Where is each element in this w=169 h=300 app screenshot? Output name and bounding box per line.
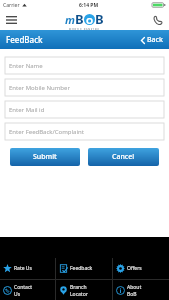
staticText: M O B I L E B A N K I N G — [69, 28, 100, 30]
button[interactable]: Cancel — [88, 148, 159, 166]
staticText: About BoB — [127, 284, 142, 297]
staticText: Enter FeedBack/Complaint — [9, 128, 84, 136]
button[interactable]: Submit — [10, 148, 80, 166]
button[interactable]: Enter Name — [5, 57, 164, 74]
staticText: Carrier — [3, 2, 20, 9]
staticText: Offers — [127, 265, 142, 272]
staticText: Rate Us — [14, 265, 32, 272]
button[interactable]: Call — [151, 13, 165, 27]
staticText: 6:14 PM — [79, 2, 99, 9]
staticText: B — [75, 10, 84, 28]
staticText: Feedback — [70, 265, 93, 272]
button[interactable]: Rate Us — [0, 258, 55, 279]
staticText: Enter Mobile Number — [9, 84, 70, 92]
staticText: Enter Mail id — [9, 106, 45, 114]
button[interactable]: Enter Mail id — [5, 101, 164, 118]
button[interactable]: Back — [141, 35, 163, 45]
staticText: B — [95, 10, 104, 28]
staticText: Back — [147, 35, 163, 45]
button[interactable]: Enter Mobile Number — [5, 79, 164, 96]
staticText: Cancel — [112, 152, 135, 162]
button[interactable]: Branch Locator — [56, 280, 112, 300]
button[interactable]: About BoB — [113, 280, 169, 300]
staticText: m — [65, 12, 75, 27]
button[interactable]: Enter FeedBack/Complaint — [5, 123, 164, 140]
staticText: Contact Us — [14, 284, 33, 297]
staticText: Submit — [33, 152, 57, 162]
staticText: Enter Name — [9, 62, 43, 70]
staticText: Branch Locator — [70, 284, 88, 297]
button[interactable]: Offers — [113, 258, 169, 279]
staticText: O — [86, 14, 94, 25]
button[interactable]: Contact Us — [0, 280, 55, 300]
staticText: FeedBack — [6, 34, 43, 45]
button[interactable]: Feedback — [56, 258, 112, 279]
button[interactable]: Menu — [4, 13, 18, 27]
